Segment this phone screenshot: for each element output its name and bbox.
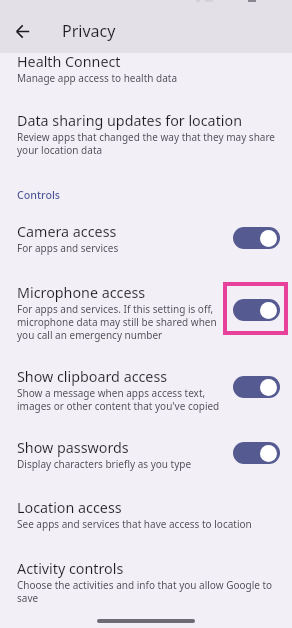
- button[interactable]: Camera access: [0, 223, 292, 255]
- staticText: Display characters briefly as you type: [17, 458, 192, 471]
- button[interactable]: Toggle: [233, 376, 280, 398]
- button[interactable]: Data sharing updates for location: [0, 112, 292, 157]
- button[interactable]: Location access: [0, 499, 292, 531]
- staticText: For apps and services. If this setting i…: [17, 303, 224, 342]
- button[interactable]: Toggle: [233, 227, 280, 249]
- staticText: Manage app access to health data: [17, 72, 178, 85]
- staticText: Show clipboard access: [17, 368, 168, 386]
- button[interactable]: Activity controls: [0, 560, 292, 605]
- button[interactable]: Show passwords: [0, 439, 292, 471]
- staticText: See apps and services that have access t…: [17, 518, 252, 531]
- staticText: Data sharing updates for location: [17, 112, 242, 130]
- button[interactable]: Microphone access: [0, 284, 292, 342]
- staticText: Health Connect: [17, 53, 121, 71]
- button[interactable]: Back: [8, 16, 38, 46]
- button[interactable]: Show clipboard access: [0, 368, 292, 413]
- staticText: For apps and services: [17, 242, 119, 255]
- staticText: Microphone access: [17, 284, 146, 302]
- staticText: Controls: [17, 188, 61, 203]
- staticText: Show a message when apps access text, im…: [17, 387, 224, 413]
- staticText: Show passwords: [17, 439, 129, 457]
- staticText: Review apps that changed the way that th…: [17, 131, 279, 157]
- staticText: Activity controls: [17, 560, 124, 578]
- staticText: Camera access: [17, 223, 117, 241]
- button[interactable]: Health Connect: [0, 53, 292, 85]
- button[interactable]: Toggle: [233, 442, 280, 464]
- staticText: Privacy: [62, 20, 116, 42]
- staticText: Location access: [17, 499, 122, 517]
- button[interactable]: Toggle: [233, 299, 280, 321]
- staticText: Choose the activities and info that you …: [17, 579, 279, 605]
